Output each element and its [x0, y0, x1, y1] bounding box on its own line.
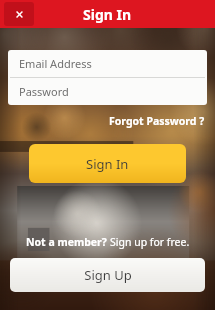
button[interactable]: Password	[8, 78, 207, 105]
staticText: Sign up for free.	[110, 235, 190, 249]
staticText: Sign Up	[84, 266, 132, 284]
button[interactable]: Email Address	[8, 50, 207, 77]
button[interactable]: Close	[4, 2, 34, 26]
button[interactable]: Sign In	[29, 144, 186, 183]
staticText: Email Address	[19, 56, 92, 71]
staticText: Not a member?	[26, 235, 110, 249]
button[interactable]: Forgot Password ?	[107, 112, 207, 130]
staticText: Forgot Password ?	[109, 114, 205, 128]
button[interactable]: Sign Up	[10, 258, 205, 292]
staticText: Sign In	[86, 155, 129, 173]
button[interactable]: Not a member?	[0, 233, 215, 251]
staticText: Sign In	[83, 5, 132, 24]
staticText: Password	[19, 84, 69, 99]
